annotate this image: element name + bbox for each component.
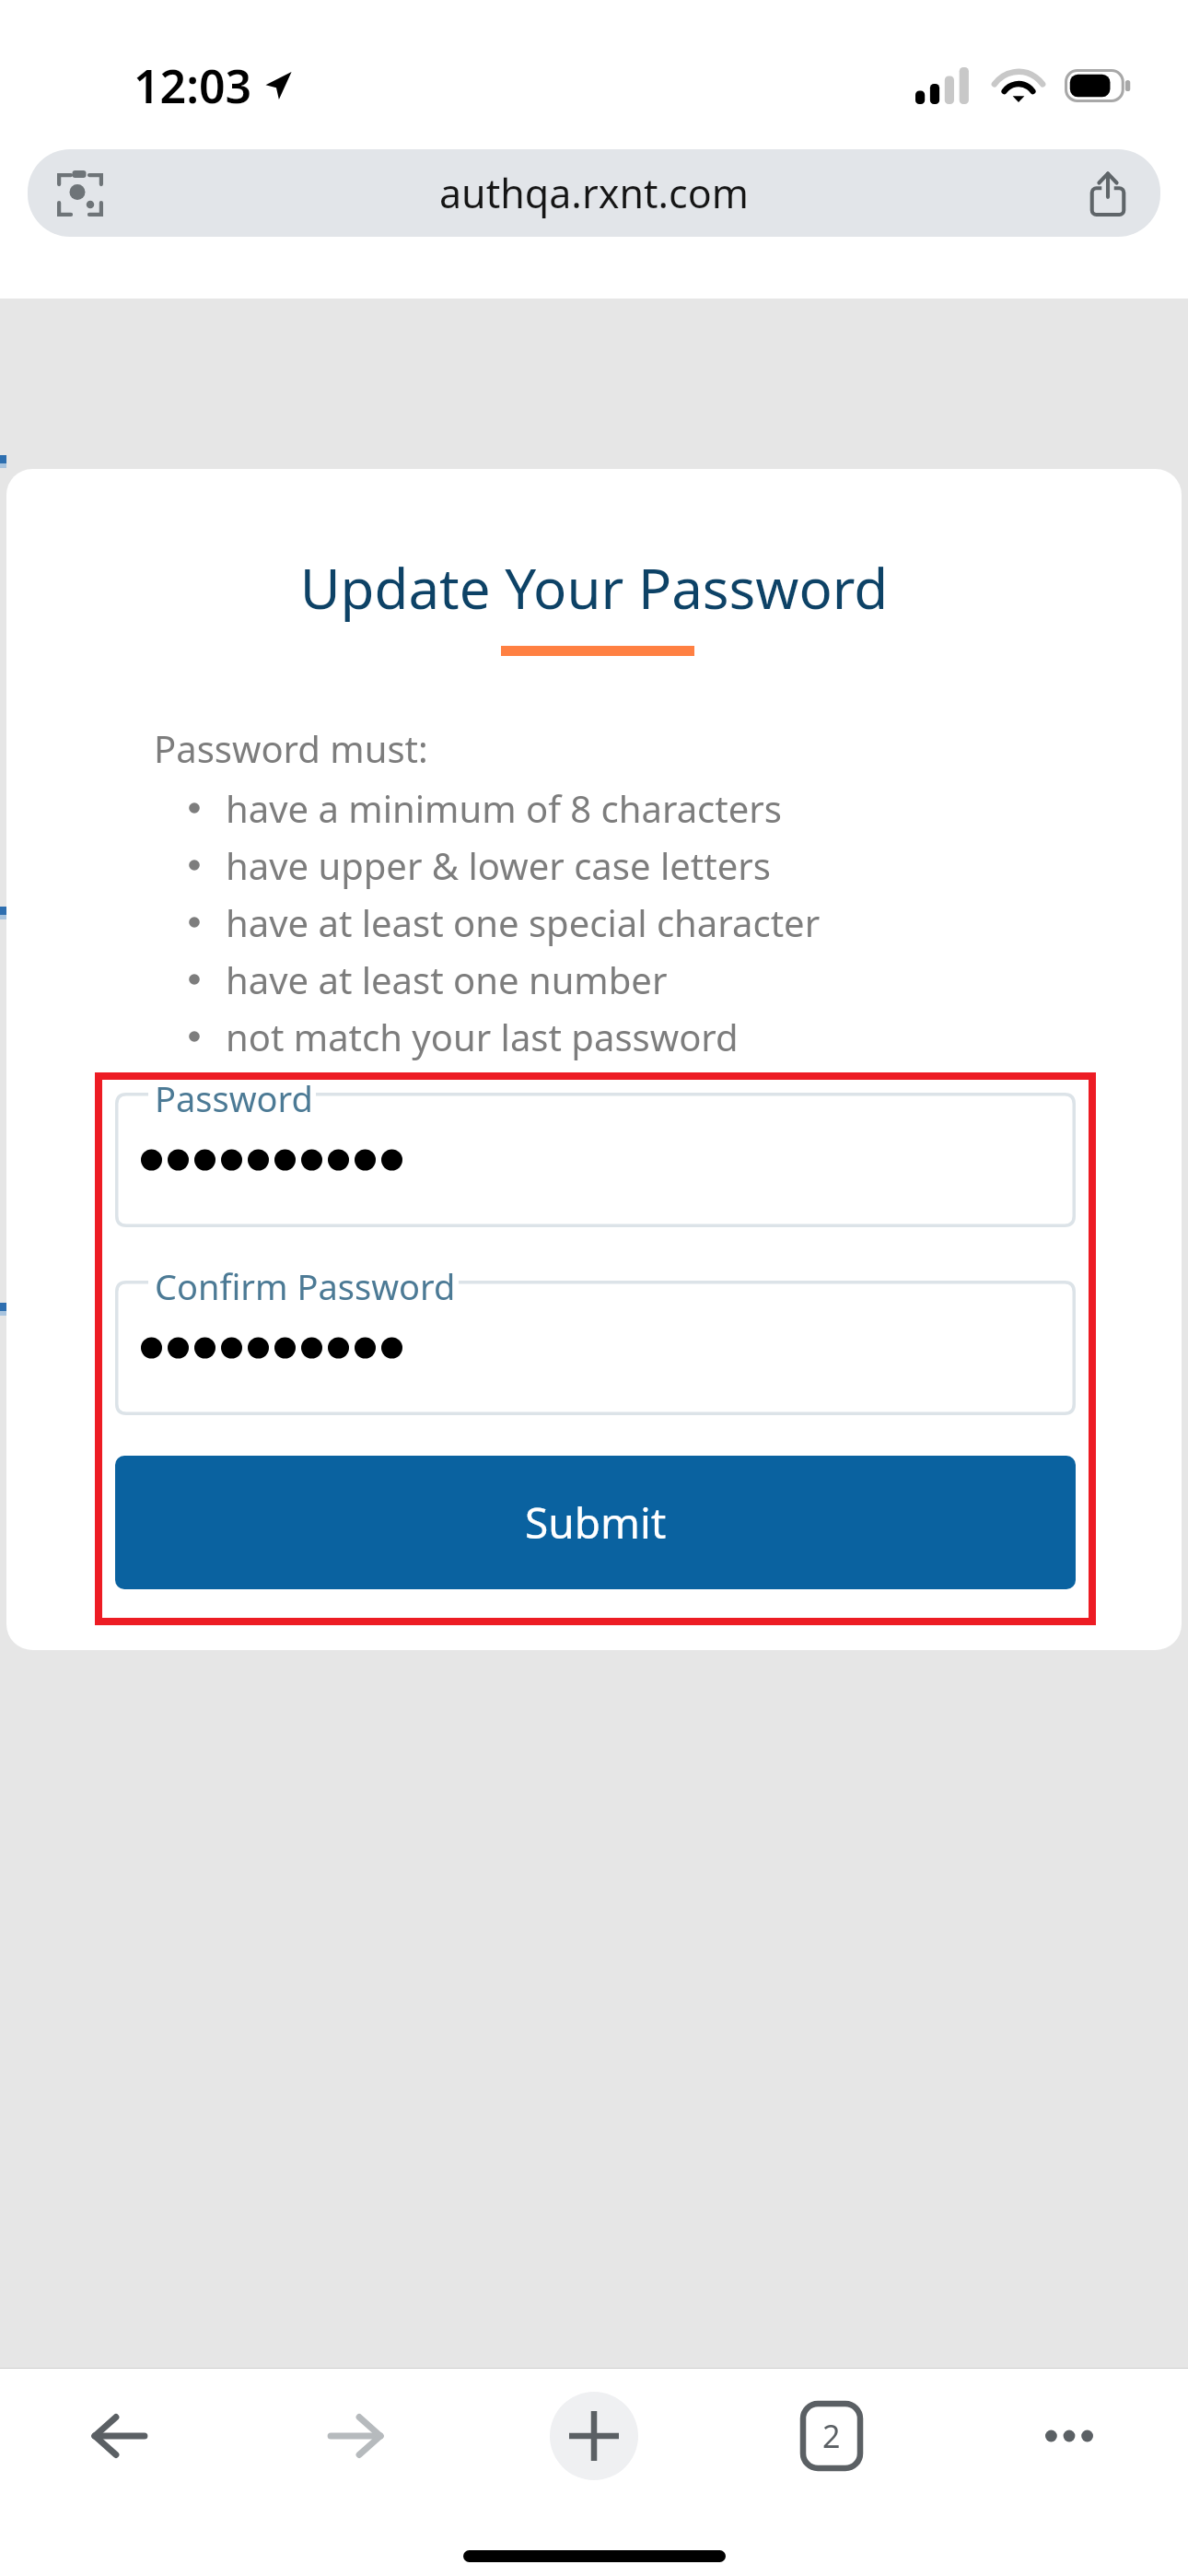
staticText: 2	[822, 2415, 841, 2457]
staticText: have at least one number	[226, 954, 668, 1004]
staticText: not match your last password	[226, 1012, 739, 1061]
staticText: have at least one special character	[226, 897, 821, 947]
button[interactable]: Share	[1079, 165, 1136, 222]
button[interactable]: authqa.rxnt.com	[28, 149, 1160, 237]
button[interactable]: Password	[115, 1093, 1076, 1227]
staticText: have upper & lower case letters	[226, 840, 771, 890]
button[interactable]: New tab	[475, 2369, 713, 2502]
staticText: 12:03	[134, 54, 252, 117]
staticText: Submit	[525, 1493, 667, 1551]
staticText: have a minimum of 8 characters	[226, 783, 782, 833]
staticText: Password	[155, 1074, 313, 1122]
button[interactable]: Tabs	[713, 2369, 950, 2502]
button[interactable]: Scan with camera	[52, 165, 109, 222]
button[interactable]: More	[950, 2369, 1188, 2502]
staticText: authqa.rxnt.com	[439, 166, 749, 220]
staticText: Update Your Password	[6, 550, 1182, 626]
staticText: Password must:	[154, 723, 428, 773]
button[interactable]: Back	[0, 2369, 238, 2502]
button[interactable]: Confirm Password	[115, 1281, 1076, 1415]
button[interactable]: Forward	[238, 2369, 475, 2502]
staticText: Confirm Password	[155, 1262, 456, 1310]
button[interactable]: Submit	[115, 1456, 1076, 1589]
